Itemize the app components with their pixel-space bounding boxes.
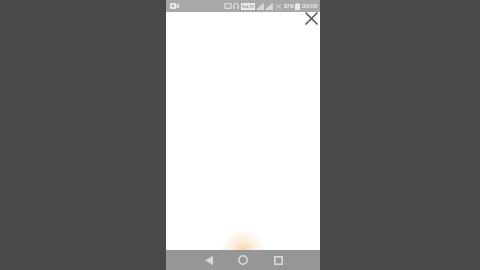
- staticText: 87%: [284, 3, 294, 10]
- staticText: 00:09: [302, 2, 318, 10]
- other: Screen recording: [168, 1, 181, 11]
- button[interactable]: Close: [301, 8, 321, 28]
- button[interactable]: Home: [224, 250, 262, 270]
- button[interactable]: Back: [190, 250, 228, 270]
- button[interactable]: Recent apps: [259, 250, 297, 270]
- staticText: VoLTE: [242, 4, 254, 9]
